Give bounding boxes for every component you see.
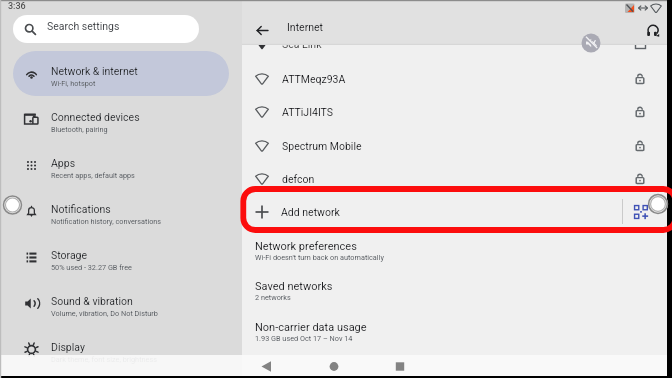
button[interactable]: Search settings bbox=[13, 15, 199, 43]
staticText: Notifications bbox=[51, 203, 111, 215]
staticText: Wi-Fi doesn't turn back on automatically bbox=[255, 253, 384, 262]
staticText: 3:36 bbox=[8, 1, 26, 12]
button[interactable]: Non-carrier data usage bbox=[242, 319, 667, 360]
staticText: defcon bbox=[282, 173, 315, 185]
button[interactable]: Home bbox=[321, 355, 347, 378]
button[interactable]: ATTMeqz93A bbox=[242, 62, 667, 96]
staticText: ATTiJI4ITS bbox=[282, 106, 334, 118]
button[interactable]: Help and feedback bbox=[640, 18, 665, 43]
button[interactable]: Display bbox=[13, 327, 229, 372]
staticText: Network & internet bbox=[51, 65, 138, 77]
button[interactable]: Storage bbox=[13, 235, 229, 280]
staticText: 50% used - 32.27 GB free bbox=[51, 263, 132, 272]
staticText: Recent apps, default apps bbox=[51, 171, 135, 180]
staticText: Dark theme, font size, brightness bbox=[51, 355, 157, 364]
button[interactable]: Back bbox=[253, 355, 279, 378]
staticText: Saved networks bbox=[255, 280, 333, 293]
staticText: Storage bbox=[51, 249, 88, 261]
staticText: Notification history, conversations bbox=[51, 217, 162, 226]
staticText: Add network bbox=[281, 206, 340, 218]
staticText: Display bbox=[51, 341, 85, 353]
staticText: Search settings bbox=[47, 20, 120, 32]
staticText: Non-carrier data usage bbox=[255, 321, 367, 334]
staticText: Sea Link bbox=[282, 45, 322, 50]
staticText: Network preferences bbox=[255, 240, 357, 253]
button[interactable]: Add network bbox=[242, 191, 667, 232]
staticText: Sound & vibration bbox=[51, 295, 133, 307]
button[interactable]: Notifications bbox=[13, 189, 229, 234]
button[interactable]: Network & internet bbox=[13, 51, 229, 96]
staticText: Apps bbox=[51, 157, 76, 169]
button[interactable]: Scan QR code bbox=[634, 205, 648, 219]
button[interactable]: Spectrum Mobile bbox=[242, 129, 667, 163]
staticText: ATTMeqz93A bbox=[282, 73, 346, 85]
button[interactable]: defcon bbox=[242, 162, 667, 196]
button[interactable] bbox=[13, 51, 229, 96]
staticText: Wi-Fi, hotspot bbox=[51, 79, 96, 88]
button[interactable]: Recent apps bbox=[387, 355, 413, 378]
staticText: Spectrum Mobile bbox=[282, 140, 362, 152]
button[interactable]: Connected devices bbox=[13, 97, 229, 142]
staticText: Internet bbox=[287, 21, 324, 33]
button[interactable]: Back bbox=[250, 18, 275, 43]
button[interactable]: Network preferences bbox=[242, 238, 667, 279]
button[interactable]: ATTiJI4ITS bbox=[242, 95, 667, 129]
staticText: 2 networks bbox=[255, 293, 291, 302]
staticText: 1.93 GB used Oct 17 – Nov 14 bbox=[255, 334, 353, 343]
button[interactable]: Saved networks bbox=[242, 278, 667, 319]
button[interactable]: Apps bbox=[13, 143, 229, 188]
staticText: Connected devices bbox=[51, 111, 140, 123]
staticText: Volume, vibration, Do Not Disturb bbox=[51, 309, 158, 318]
staticText: Bluetooth, pairing bbox=[51, 125, 108, 134]
button[interactable]: Sound & vibration bbox=[13, 281, 229, 326]
